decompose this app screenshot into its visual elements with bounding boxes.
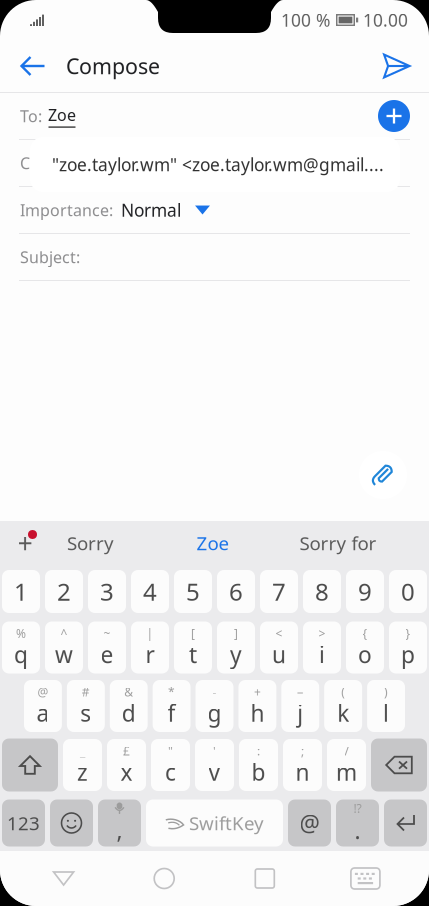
button[interactable]: =: [281, 680, 319, 732]
button[interactable]: Recent apps: [228, 852, 302, 904]
button[interactable]: Send: [365, 40, 429, 92]
staticText: Cc:: [20, 152, 42, 174]
staticText: e: [100, 639, 113, 669]
staticText: @: [299, 808, 319, 838]
button[interactable]: Return: [384, 799, 427, 846]
staticText: Importance:: [20, 199, 113, 221]
staticText: 0: [401, 576, 415, 607]
button[interactable]: @: [288, 799, 331, 846]
button[interactable]: Attach file: [359, 451, 407, 499]
button[interactable]: 7: [260, 570, 298, 613]
button[interactable]: Space: [146, 799, 283, 846]
staticText: <: [275, 625, 282, 641]
button[interactable]: {: [346, 621, 384, 673]
button[interactable]: £: [107, 739, 146, 791]
button[interactable]: Voice input: [98, 799, 141, 846]
staticText: #: [82, 684, 90, 700]
button[interactable]: *: [153, 680, 191, 732]
staticText: %: [16, 625, 26, 641]
staticText: &: [124, 684, 133, 700]
button[interactable]: 5: [174, 570, 212, 613]
staticText: o: [358, 639, 372, 669]
staticText: i: [319, 639, 325, 669]
button[interactable]: _: [63, 739, 102, 791]
button[interactable]: Back: [27, 852, 101, 904]
button[interactable]: Normal: [121, 198, 210, 221]
button[interactable]: /: [327, 739, 366, 791]
staticText: 123: [7, 811, 40, 835]
staticText: SwiftKey: [189, 811, 264, 835]
button[interactable]: Add recipient: [378, 100, 410, 132]
button[interactable]: &: [110, 680, 148, 732]
button[interactable]: Hide keyboard: [328, 852, 402, 904]
staticText: a: [36, 698, 49, 728]
button[interactable]: 6: [217, 570, 255, 613]
staticText: r: [145, 639, 154, 669]
button[interactable]: :: [239, 739, 278, 791]
button[interactable]: Home: [127, 852, 201, 904]
staticText: Zoe: [196, 531, 229, 555]
button[interactable]: Shift: [2, 738, 58, 791]
button[interactable]: ): [367, 680, 405, 732]
button[interactable]: 0: [389, 570, 427, 613]
button[interactable]: -: [196, 680, 233, 732]
button[interactable]: 4: [131, 570, 169, 613]
button[interactable]: Numbers and symbols: [2, 799, 45, 846]
button[interactable]: 1: [2, 570, 40, 613]
button[interactable]: [: [174, 621, 212, 673]
staticText: 1: [14, 576, 28, 607]
button[interactable]: ~: [88, 621, 126, 673]
button[interactable]: +: [238, 680, 276, 732]
button[interactable]: ': [195, 739, 234, 791]
button[interactable]: >: [303, 621, 341, 673]
button[interactable]: (: [324, 680, 362, 732]
button[interactable]: 9: [346, 570, 384, 613]
staticText: 9: [358, 576, 372, 607]
staticText: h: [250, 698, 264, 728]
staticText: Sorry for: [299, 531, 376, 555]
staticText: ): [384, 684, 388, 700]
button[interactable]: Zoe: [153, 521, 273, 565]
staticText: "zoe.taylor.wm" <zoe.taylor.wm@gmail....: [52, 153, 384, 176]
staticText: y: [230, 639, 242, 669]
button[interactable]: <: [260, 621, 298, 673]
staticText: Subject:: [20, 246, 80, 268]
staticText: x: [120, 757, 132, 787]
staticText: n: [295, 757, 309, 787]
staticText: c: [165, 757, 176, 787]
staticText: ": [168, 743, 173, 759]
staticText: |: [146, 625, 153, 641]
button[interactable]: Back: [0, 40, 66, 92]
button[interactable]: ;: [283, 739, 322, 791]
button[interactable]: #: [67, 680, 105, 732]
staticText: !?: [353, 800, 361, 816]
button[interactable]: }: [389, 621, 427, 673]
staticText: 100 %: [281, 8, 330, 31]
button[interactable]: ]: [217, 621, 255, 673]
button[interactable]: %: [2, 621, 40, 673]
button[interactable]: 3: [88, 570, 126, 613]
staticText: k: [337, 698, 349, 728]
button[interactable]: 8: [303, 570, 341, 613]
staticText: ~: [103, 625, 110, 641]
staticText: m: [336, 757, 357, 787]
staticText: u: [272, 639, 286, 669]
button[interactable]: Emoji: [50, 799, 93, 846]
staticText: l: [383, 698, 389, 728]
button[interactable]: 2: [45, 570, 83, 613]
staticText: Compose: [66, 52, 160, 80]
staticText: w: [55, 639, 73, 669]
button[interactable]: |: [131, 621, 169, 673]
staticText: @: [37, 684, 48, 700]
button[interactable]: @: [24, 680, 62, 732]
button[interactable]: Sorry: [28, 521, 153, 565]
staticText: d: [122, 698, 136, 728]
button[interactable]: Period: [336, 799, 379, 846]
staticText: 2: [57, 576, 71, 607]
button[interactable]: ^: [45, 621, 83, 673]
staticText: 3: [100, 576, 114, 607]
staticText: ': [213, 743, 216, 759]
button[interactable]: ": [151, 739, 190, 791]
button[interactable]: Sorry for: [273, 521, 403, 565]
button[interactable]: Delete: [371, 738, 427, 791]
